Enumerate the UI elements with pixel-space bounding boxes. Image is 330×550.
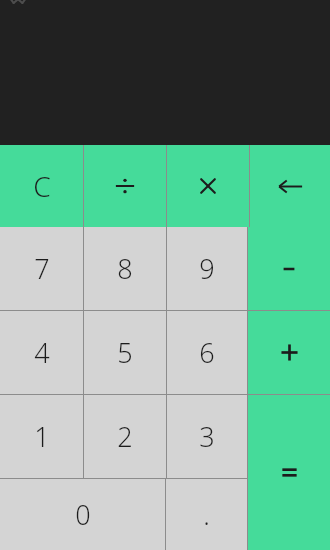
button[interactable]: 4	[0, 311, 83, 394]
staticText: 3	[199, 418, 215, 455]
button[interactable]: 2	[84, 395, 166, 478]
staticText: 5	[117, 334, 133, 371]
button[interactable]: Multiply	[167, 145, 249, 227]
staticText: 8	[117, 250, 133, 287]
button[interactable]: Divide	[84, 145, 166, 227]
staticText: 1	[34, 418, 50, 455]
button[interactable]: 3	[167, 395, 247, 478]
staticText: C	[33, 167, 51, 205]
button[interactable]: 8	[84, 227, 166, 310]
staticText: 6	[199, 334, 215, 371]
button[interactable]: C	[0, 145, 83, 227]
button[interactable]: Subtract	[248, 227, 330, 310]
button[interactable]: Add	[248, 311, 330, 394]
button[interactable]: .	[166, 479, 247, 550]
button[interactable]: 5	[84, 311, 166, 394]
staticText: 2	[117, 418, 133, 455]
staticText: 4	[34, 334, 50, 371]
staticText: 7	[34, 250, 50, 287]
button[interactable]: 7	[0, 227, 83, 310]
staticText: .	[203, 496, 210, 533]
button[interactable]: 6	[167, 311, 247, 394]
staticText: 0	[75, 496, 91, 533]
staticText: 9	[199, 250, 215, 287]
button[interactable]: 9	[167, 227, 247, 310]
button[interactable]: 0	[0, 479, 165, 550]
button[interactable]: Backspace	[250, 145, 330, 227]
button[interactable]: Equals	[248, 395, 330, 550]
button[interactable]: 1	[0, 395, 83, 478]
